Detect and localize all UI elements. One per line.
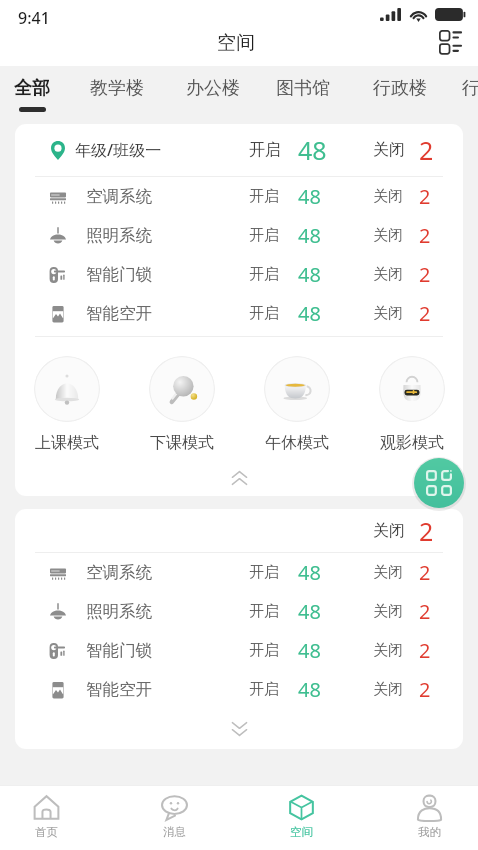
staticText: 开启: [249, 187, 279, 206]
staticText: 空调系统: [86, 186, 152, 207]
staticText: 行: [462, 77, 478, 100]
button[interactable]: 办公楼: [176, 66, 250, 112]
button[interactable]: Expand: [15, 709, 463, 749]
button[interactable]: 教学楼: [80, 66, 154, 112]
button[interactable]: 行: [455, 66, 478, 112]
button[interactable]: 下课模式: [135, 337, 229, 441]
button[interactable]: 智能空开: [15, 294, 463, 333]
staticText: 关闭: [373, 265, 403, 284]
staticText: 智能门锁: [86, 264, 152, 285]
staticText: 48: [298, 637, 321, 664]
button[interactable]: 图书馆: [266, 66, 340, 112]
staticText: 2: [419, 637, 431, 664]
button[interactable]: 全部: [5, 66, 59, 112]
staticText: 全部: [14, 77, 50, 100]
staticText: 48: [298, 133, 327, 167]
staticText: 关闭: [373, 140, 405, 160]
staticText: 开启: [249, 641, 279, 660]
button[interactable]: List view: [433, 24, 467, 58]
staticText: 智能空开: [86, 303, 152, 324]
staticText: 开启: [249, 304, 279, 323]
button[interactable]: 智能空开: [15, 670, 463, 709]
staticText: 消息: [163, 825, 186, 839]
staticText: 照明系统: [86, 225, 152, 246]
button[interactable]: 照明系统: [15, 592, 463, 631]
staticText: 关闭: [373, 187, 403, 206]
staticText: 下课模式: [150, 433, 214, 453]
button[interactable]: 空调系统: [15, 177, 463, 216]
staticText: 2: [419, 559, 431, 586]
button[interactable]: 我的: [397, 785, 461, 850]
staticText: 48: [298, 300, 321, 327]
staticText: 空间: [290, 825, 313, 839]
staticText: 观影模式: [380, 433, 444, 453]
button[interactable]: 照明系统: [15, 216, 463, 255]
staticText: 48: [298, 261, 321, 288]
button[interactable]: 行政楼: [363, 66, 437, 112]
staticText: 2: [419, 514, 434, 548]
button[interactable]: 上课模式: [20, 337, 114, 441]
staticText: 开启: [249, 563, 279, 582]
staticText: 2: [419, 183, 431, 210]
staticText: 2: [419, 300, 431, 327]
staticText: 关闭: [373, 226, 403, 245]
staticText: 关闭: [373, 521, 405, 541]
staticText: 2: [419, 598, 431, 625]
staticText: 2: [419, 133, 434, 167]
staticText: 行政楼: [373, 77, 427, 100]
staticText: 关闭: [373, 680, 403, 699]
staticText: 开启: [249, 226, 279, 245]
staticText: 空调系统: [86, 562, 152, 583]
staticText: 48: [298, 598, 321, 625]
button[interactable]: 消息: [142, 785, 206, 850]
staticText: 关闭: [373, 563, 403, 582]
button[interactable]: 观影模式: [365, 337, 459, 441]
staticText: 开启: [249, 602, 279, 621]
button[interactable]: 午休模式: [250, 337, 344, 441]
button[interactable]: 智能门锁: [15, 255, 463, 294]
button[interactable]: Apps: [414, 458, 464, 508]
staticText: 48: [298, 676, 321, 703]
staticText: 关闭: [373, 304, 403, 323]
staticText: 首页: [35, 825, 58, 839]
staticText: 48: [298, 183, 321, 210]
staticText: 年级/班级一: [75, 139, 162, 161]
staticText: 开启: [249, 680, 279, 699]
button[interactable]: 空间: [269, 785, 333, 850]
staticText: 空间: [217, 31, 255, 55]
button[interactable]: Collapse: [209, 461, 269, 495]
staticText: 开启: [249, 265, 279, 284]
staticText: 48: [298, 559, 321, 586]
staticText: 我的: [418, 825, 441, 839]
button[interactable]: 智能门锁: [15, 631, 463, 670]
staticText: 48: [298, 222, 321, 249]
staticText: 关闭: [373, 602, 403, 621]
staticText: 上课模式: [35, 433, 99, 453]
staticText: 午休模式: [265, 433, 329, 453]
staticText: 关闭: [373, 641, 403, 660]
staticText: 照明系统: [86, 601, 152, 622]
staticText: 2: [419, 222, 431, 249]
staticText: 2: [419, 261, 431, 288]
staticText: 办公楼: [186, 77, 240, 100]
staticText: 9:41: [18, 7, 50, 29]
button[interactable]: 空调系统: [15, 553, 463, 592]
button[interactable]: 首页: [14, 785, 78, 850]
staticText: 2: [419, 676, 431, 703]
staticText: 图书馆: [276, 77, 330, 100]
staticText: 教学楼: [90, 77, 144, 100]
staticText: 智能门锁: [86, 640, 152, 661]
staticText: 智能空开: [86, 679, 152, 700]
staticText: 开启: [249, 140, 281, 160]
